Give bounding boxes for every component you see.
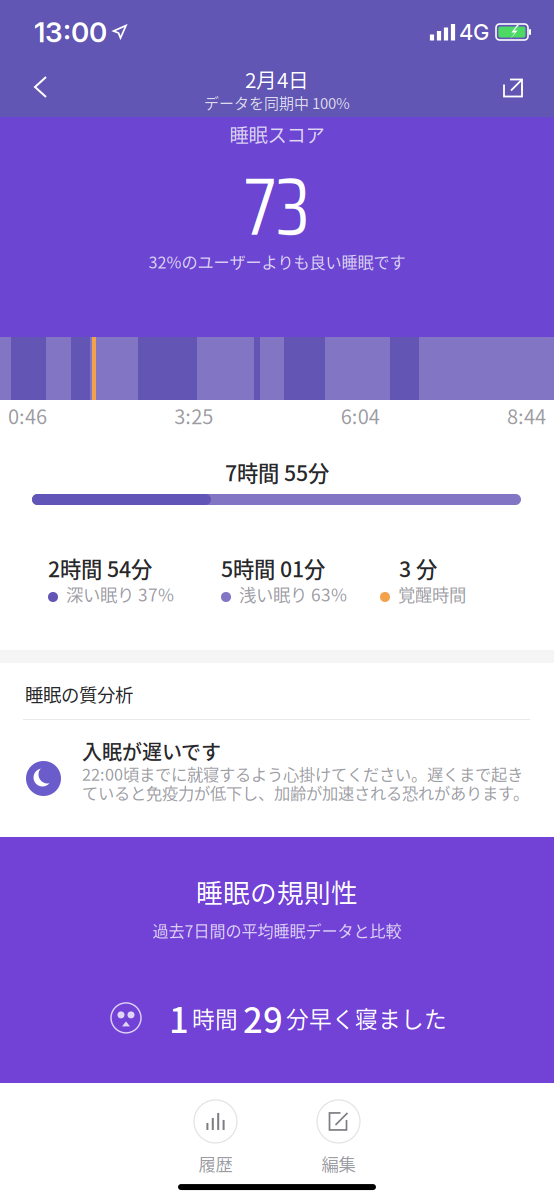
button[interactable]: Share: [485, 59, 554, 115]
staticText: 過去7日間の平均睡眠データと比較: [152, 919, 401, 942]
staticText: 29: [243, 993, 283, 1043]
button[interactable]: 編集: [317, 1100, 360, 1176]
staticText: 分早く寝ました: [286, 1001, 447, 1034]
staticText: 73: [244, 144, 310, 270]
staticText: 7時間 55分: [225, 457, 329, 487]
staticText: 2月4日: [245, 64, 309, 94]
staticText: 深い眠り 37%: [66, 581, 174, 607]
staticText: 浅い眠り 63%: [239, 581, 347, 607]
staticText: 8:44: [507, 401, 546, 430]
staticText: 0:46: [8, 401, 47, 430]
staticText: 5時間 01分: [221, 553, 325, 583]
staticText: 6:04: [341, 401, 380, 430]
staticText: 睡眠スコア: [229, 120, 324, 148]
staticText: 3:25: [174, 401, 213, 430]
staticText: 4G: [459, 19, 489, 45]
staticText: 履歴: [198, 1151, 232, 1176]
staticText: 覚醒時間: [398, 581, 466, 607]
staticText: 編集: [321, 1151, 355, 1176]
staticText: データを同期中 100%: [204, 92, 350, 113]
staticText: 入眠が遅いです: [82, 736, 221, 765]
staticText: 1: [169, 993, 189, 1043]
staticText: 13:00: [34, 15, 107, 49]
staticText: 睡眠の規則性: [196, 872, 358, 911]
staticText: 22:00頃までに就寝するよう心掛けてください。遅くまで起きていると免疫力が低下…: [82, 762, 529, 804]
button[interactable]: 履歴: [194, 1100, 237, 1176]
staticText: 32%のユーザーよりも良い睡眠です: [148, 250, 405, 273]
staticText: 3 分: [399, 553, 437, 583]
staticText: 2時間 54分: [48, 553, 152, 583]
staticText: 時間: [192, 1001, 238, 1034]
button[interactable]: Back: [0, 58, 66, 117]
staticText: 睡眠の質分析: [25, 681, 133, 707]
